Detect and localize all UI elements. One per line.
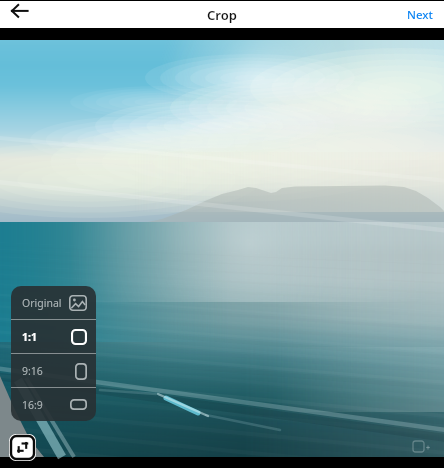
staticText: Next <box>407 7 433 23</box>
staticText: 9:16 <box>22 364 43 378</box>
button[interactable]: Add <box>410 438 434 456</box>
button[interactable]: Original <box>11 286 96 320</box>
staticText: 16:9 <box>22 398 43 412</box>
button[interactable]: Next <box>407 1 433 28</box>
button[interactable]: Back <box>0 1 32 28</box>
staticText: 1:1 <box>22 330 37 344</box>
staticText: Original <box>22 296 62 310</box>
staticText: Crop <box>207 6 237 24</box>
button[interactable]: 16:9 <box>11 388 96 421</box>
button[interactable]: Reset crop <box>9 434 36 461</box>
button[interactable]: 1:1 <box>11 320 96 354</box>
button[interactable]: 9:16 <box>11 354 96 388</box>
